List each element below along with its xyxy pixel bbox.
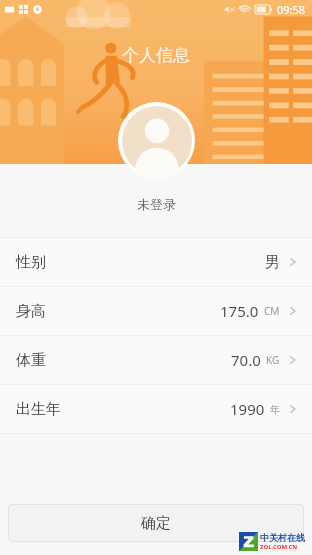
staticText: 1990 [230,399,265,419]
button[interactable]: 头像 [118,102,195,179]
staticText: 出生年 [16,400,61,419]
staticText: 175.0 [220,301,259,321]
staticText: 体重 [16,351,46,370]
staticText: 个人信息 [122,45,190,66]
staticText: 未登录 [137,196,176,212]
staticText: 性别 [16,253,46,272]
staticText: 年 [270,403,280,416]
staticText: CM [264,304,280,318]
button[interactable]: 身高 [0,287,312,335]
button[interactable]: 体重 [0,336,312,384]
staticText: 身高 [16,302,46,321]
button[interactable]: 出生年 [0,385,312,433]
staticText: 70.0 [231,350,261,370]
staticText: ZOL.COM.CN [260,543,298,551]
staticText: 中关村在线 [260,532,305,543]
button[interactable]: 性别 [0,238,312,286]
staticText: 男 [265,253,280,272]
staticText: 09:58 [277,2,306,17]
staticText: KG [266,353,280,367]
button[interactable]: 确定 [8,504,304,542]
staticText: 确定 [141,514,171,533]
